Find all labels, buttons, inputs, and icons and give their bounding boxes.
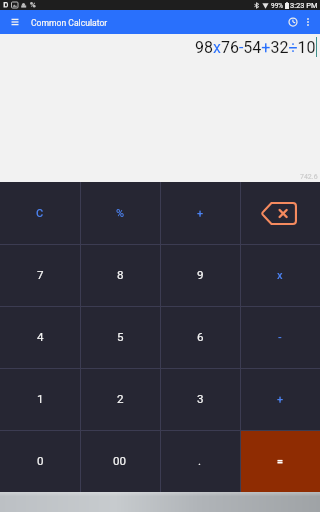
staticText: 742.6 (300, 173, 318, 181)
button[interactable]: Menu (0, 10, 29, 34)
staticText: = (277, 455, 284, 467)
button[interactable]: C (0, 182, 80, 244)
staticText: 5 (117, 330, 124, 344)
staticText: 3 (197, 392, 204, 406)
button[interactable]: 1 (0, 368, 80, 430)
button[interactable]: 00 (80, 430, 160, 492)
other: Backspace (260, 202, 297, 225)
button[interactable]: 9 (160, 244, 240, 306)
staticText: 2 (117, 392, 124, 406)
staticText: 8 (117, 268, 124, 282)
button[interactable]: More options (296, 10, 320, 34)
button[interactable]: 0 (0, 430, 80, 492)
staticText: 00 (113, 454, 127, 468)
staticText: x (277, 269, 283, 282)
button[interactable]: + (160, 182, 240, 244)
staticText: 0 (37, 454, 44, 468)
button[interactable]: 8 (80, 244, 160, 306)
staticText: Common Calculator (31, 18, 108, 28)
staticText: 99% (271, 2, 284, 10)
button[interactable]: History (276, 10, 296, 34)
button[interactable]: 6 (160, 306, 240, 368)
staticText: + (277, 393, 284, 406)
button[interactable]: = (240, 430, 320, 492)
staticText: 4 (37, 330, 44, 344)
staticText: 1 (37, 392, 44, 406)
button[interactable]: 3 (160, 368, 240, 430)
button[interactable]: Backspace (240, 182, 320, 244)
button[interactable]: 7 (0, 244, 80, 306)
staticText: 6 (197, 330, 204, 344)
button[interactable]: + (240, 368, 320, 430)
staticText: - (278, 331, 282, 344)
button[interactable]: 5 (80, 306, 160, 368)
staticText: C (36, 207, 44, 220)
button[interactable]: . (160, 430, 240, 492)
button[interactable]: 4 (0, 306, 80, 368)
button[interactable]: - (240, 306, 320, 368)
staticText: 3:23 PM (290, 1, 318, 10)
staticText: 98x76-54+32÷10 (195, 38, 316, 57)
staticText: 9 (197, 268, 204, 282)
staticText: . (198, 454, 202, 468)
button[interactable]: 2 (80, 368, 160, 430)
button[interactable]: x (240, 244, 320, 306)
staticText: % (116, 207, 125, 220)
staticText: + (197, 207, 204, 220)
button[interactable]: % (80, 182, 160, 244)
staticText: 7 (37, 268, 44, 282)
